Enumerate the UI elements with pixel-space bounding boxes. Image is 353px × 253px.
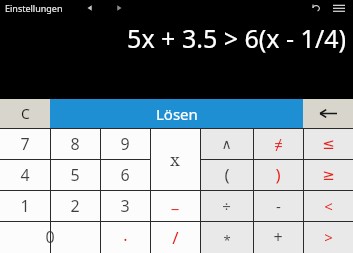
button[interactable]: 1 [0,190,50,221]
staticText: / [172,226,179,249]
staticText: 0 [45,226,55,248]
button[interactable]: ≠ [253,128,303,159]
button[interactable]: x [150,128,200,190]
staticText: - [276,196,281,216]
staticText: 4 [20,164,30,186]
staticText: 7 [20,133,30,155]
button[interactable]: 0 [0,221,100,253]
button[interactable]: + [253,221,303,253]
button[interactable]: Next [111,0,127,16]
button[interactable]: 9 [100,128,150,159]
staticText: + [273,226,283,248]
staticText: ≥ [322,166,335,183]
staticText: ≤ [322,135,335,152]
button[interactable]: Einstellungen [3,1,65,15]
staticText: 8 [70,133,80,155]
button[interactable]: ∧ [200,128,253,159]
staticText: 5 [70,164,80,186]
button[interactable]: . [100,221,150,253]
staticText: > [324,227,333,247]
button[interactable]: 4 [0,159,50,190]
button[interactable]: 5x + 3.5 > 6(x - 1/4) [0,16,353,99]
button[interactable]: < [303,190,353,221]
button[interactable]: Undo [308,0,324,16]
button[interactable]: ) [253,159,303,190]
staticText: ( [224,163,230,186]
staticText: ≠ [274,134,283,154]
button[interactable]: C [0,99,50,128]
button[interactable]: 6 [100,159,150,190]
button[interactable]: 2 [50,190,100,221]
button[interactable]: * [200,221,253,253]
staticText: 9 [120,133,130,155]
button[interactable]: > [303,221,353,253]
button[interactable]: 7 [0,128,50,159]
button[interactable]: ÷ [200,190,253,221]
staticText: 3 [120,195,130,217]
button[interactable]: - [253,190,303,221]
staticText: ÷ [222,196,231,216]
staticText: x [170,148,180,171]
button[interactable]: 3 [100,190,150,221]
button[interactable]: ≤ [303,128,353,159]
staticText: Lösen [156,104,198,124]
staticText: * [223,231,231,249]
staticText: ∧ [221,136,232,152]
staticText: . [123,224,128,246]
staticText: Einstellungen [5,2,63,14]
staticText: C [21,104,30,123]
button[interactable]: _ [150,190,200,221]
button[interactable]: Previous [82,0,98,16]
button[interactable]: 5 [50,159,100,190]
staticText: 2 [70,195,80,217]
staticText: 5x + 3.5 > 6(x - 1/4) [127,21,346,55]
button[interactable]: ≥ [303,159,353,190]
staticText: 1 [20,195,30,217]
staticText: ) [275,163,281,186]
button[interactable]: Lösen [50,99,303,128]
button[interactable]: Menu [330,0,348,16]
button[interactable]: ( [200,159,253,190]
button[interactable]: Backspace [303,99,353,128]
button[interactable]: 8 [50,128,100,159]
staticText: _ [171,191,179,213]
staticText: 6 [120,164,130,186]
button[interactable]: / [150,221,200,253]
staticText: < [324,196,333,216]
